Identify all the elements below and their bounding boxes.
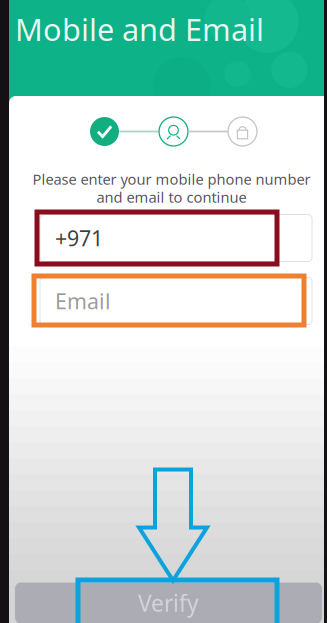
staticText: Verify <box>138 588 199 618</box>
staticText: and email to continue <box>96 187 246 207</box>
staticText: Mobile and Email <box>15 9 264 49</box>
staticText: +971 <box>55 224 103 252</box>
staticText: Please enter your mobile phone number <box>32 169 310 189</box>
button[interactable]: Verify <box>15 582 322 623</box>
staticText: Email <box>55 287 111 315</box>
